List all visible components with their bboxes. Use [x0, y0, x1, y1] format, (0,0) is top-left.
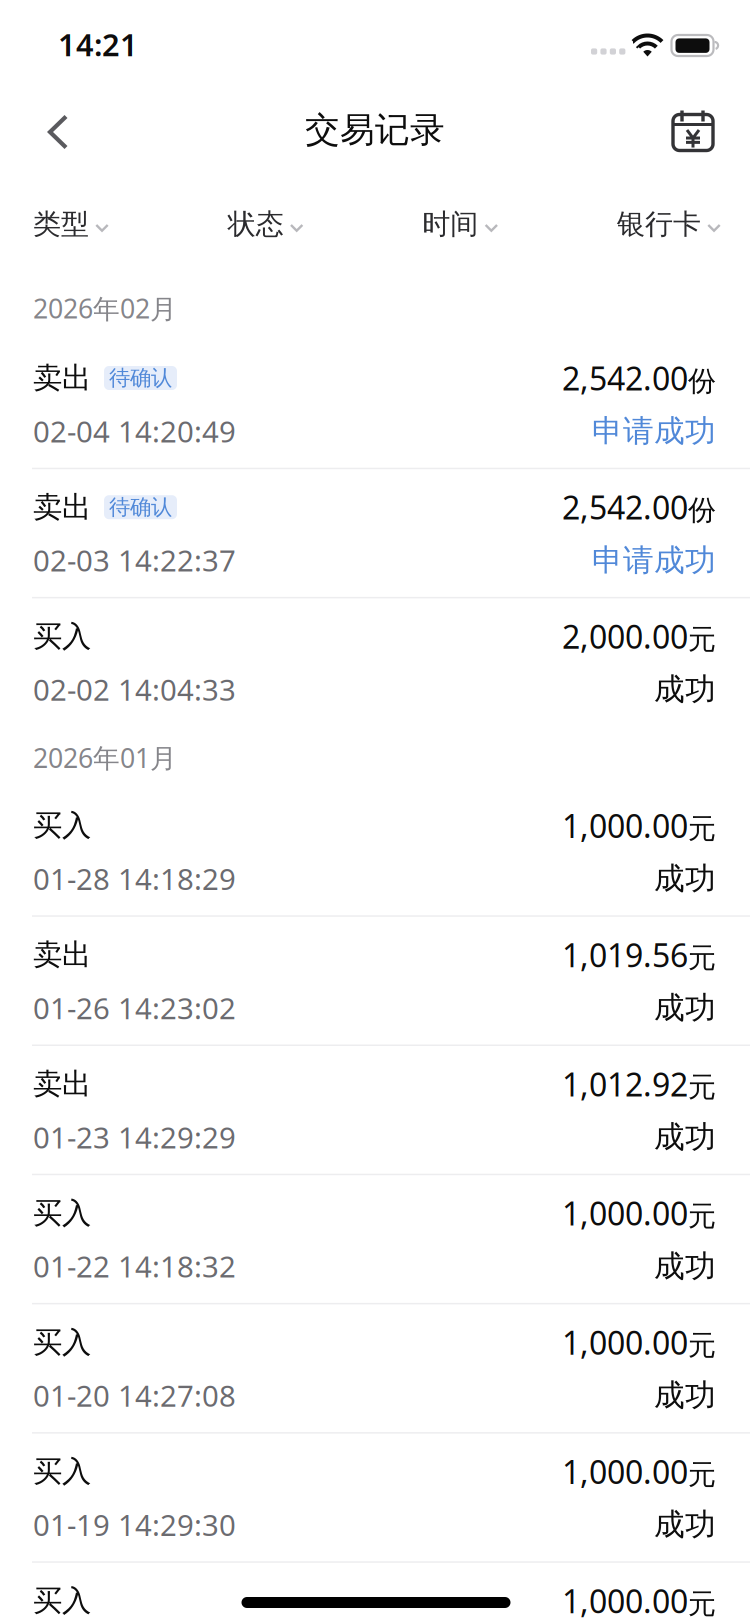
- staticText: 成功: [654, 1118, 716, 1156]
- staticText: 交易记录: [305, 109, 445, 151]
- staticText: 元: [688, 1070, 716, 1104]
- staticText: 1,000.00: [562, 1192, 688, 1234]
- staticText: 成功: [654, 860, 716, 897]
- button[interactable]: 卖出: [0, 1046, 750, 1175]
- staticText: 02-03 14:22:37: [33, 541, 236, 580]
- staticText: 买入: [33, 1454, 91, 1490]
- staticText: 银行卡: [617, 207, 701, 241]
- staticText: 成功: [654, 671, 716, 708]
- staticText: 元: [688, 1199, 716, 1233]
- button[interactable]: 按月份筛选: [661, 97, 725, 163]
- staticText: 买入: [33, 808, 91, 844]
- staticText: 成功: [654, 1506, 716, 1543]
- staticText: 01-23 14:29:29: [33, 1117, 236, 1156]
- staticText: 类型: [33, 207, 89, 241]
- staticText: 份: [688, 493, 716, 527]
- staticText: 待确认: [109, 365, 172, 391]
- button[interactable]: 银行卡: [617, 193, 721, 255]
- staticText: 卖出: [33, 1066, 91, 1102]
- staticText: 14:21: [58, 24, 138, 65]
- button[interactable]: 卖出: [0, 917, 750, 1046]
- staticText: 待确认: [109, 494, 172, 520]
- staticText: 02-04 14:20:49: [33, 411, 236, 450]
- staticText: 2026年02月: [33, 290, 177, 326]
- staticText: 卖出: [33, 360, 91, 396]
- button[interactable]: 类型: [33, 193, 109, 255]
- staticText: 1,000.00: [562, 804, 688, 847]
- staticText: 成功: [654, 989, 716, 1027]
- staticText: 01-28 14:18:29: [33, 859, 236, 898]
- staticText: 2,000.00: [562, 615, 688, 658]
- staticText: 份: [688, 364, 716, 398]
- staticText: 申请成功: [592, 541, 716, 579]
- button[interactable]: 返回: [26, 97, 90, 163]
- staticText: 状态: [228, 207, 284, 241]
- staticText: 01-26 14:23:02: [33, 988, 236, 1027]
- staticText: 时间: [422, 207, 478, 241]
- staticText: 1,000.00: [562, 1450, 688, 1493]
- button[interactable]: 卖出: [0, 469, 750, 598]
- button[interactable]: 买入: [0, 1434, 750, 1563]
- staticText: 02-02 14:04:33: [33, 670, 236, 709]
- staticText: 买入: [33, 618, 91, 654]
- staticText: 申请成功: [592, 412, 716, 450]
- button[interactable]: 状态: [228, 193, 304, 255]
- button[interactable]: 时间: [422, 193, 498, 255]
- staticText: 卖出: [33, 489, 91, 525]
- staticText: 01-22 14:18:32: [33, 1247, 236, 1286]
- staticText: 2026年01月: [33, 740, 177, 775]
- staticText: 元: [688, 1457, 716, 1492]
- staticText: 卖出: [33, 937, 91, 973]
- staticText: 元: [688, 1587, 716, 1621]
- staticText: 元: [688, 1328, 716, 1363]
- staticText: 买入: [33, 1583, 91, 1619]
- button[interactable]: 买入: [0, 1563, 750, 1624]
- staticText: 成功: [654, 1247, 716, 1285]
- button[interactable]: 买入: [0, 1175, 750, 1304]
- staticText: 元: [688, 811, 716, 846]
- staticText: 1,012.92: [562, 1063, 688, 1105]
- staticText: 1,000.00: [562, 1321, 688, 1364]
- staticText: 2,542.00: [562, 357, 688, 399]
- staticText: 成功: [654, 1377, 716, 1414]
- staticText: 元: [688, 941, 716, 975]
- staticText: 01-20 14:27:08: [33, 1376, 236, 1415]
- staticText: 买入: [33, 1195, 91, 1231]
- staticText: 1,019.56: [562, 934, 688, 976]
- staticText: 1,000.00: [562, 1580, 688, 1622]
- button[interactable]: 卖出: [0, 340, 750, 469]
- button[interactable]: 买入: [0, 1304, 750, 1434]
- staticText: 2,542.00: [562, 486, 688, 528]
- staticText: 买入: [33, 1324, 91, 1360]
- staticText: 01-19 14:29:30: [33, 1505, 236, 1544]
- button[interactable]: 买入: [0, 788, 750, 917]
- staticText: 元: [688, 622, 716, 657]
- button[interactable]: 买入: [0, 598, 750, 728]
